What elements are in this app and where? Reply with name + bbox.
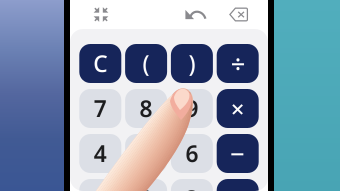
button[interactable]: 3	[171, 179, 213, 191]
staticText: −	[230, 137, 245, 170]
button[interactable]: 4	[79, 134, 121, 173]
button[interactable]: ÷	[217, 44, 259, 83]
button[interactable]: 5	[125, 134, 167, 173]
staticText: 7	[94, 93, 107, 123]
staticText: C	[93, 48, 107, 78]
staticText: 2	[140, 183, 153, 191]
button[interactable]: C	[79, 44, 121, 83]
staticText: (	[143, 48, 150, 78]
staticText: ×	[231, 93, 245, 124]
button[interactable]: (	[125, 44, 167, 83]
staticText: 6	[185, 138, 198, 168]
button[interactable]: 8	[125, 89, 167, 128]
button[interactable]: 2	[125, 179, 167, 191]
staticText: 5	[140, 138, 153, 168]
button[interactable]: Delete	[229, 7, 248, 22]
staticText: 4	[94, 138, 107, 168]
button[interactable]: +	[217, 179, 259, 191]
button[interactable]: Undo	[185, 8, 206, 20]
staticText: 8	[140, 93, 153, 123]
button[interactable]: ×	[217, 89, 259, 128]
button[interactable]: 9	[171, 89, 213, 128]
button[interactable]: )	[171, 44, 213, 83]
staticText: 3	[185, 183, 198, 191]
button[interactable]: −	[217, 134, 259, 173]
button[interactable]: 1	[79, 179, 121, 191]
button[interactable]: Collapse keypad	[94, 7, 108, 22]
staticText: 1	[94, 183, 107, 191]
staticText: )	[188, 48, 195, 78]
staticText: ÷	[231, 47, 245, 80]
button[interactable]: 6	[171, 134, 213, 173]
button[interactable]: 7	[79, 89, 121, 128]
staticText: 9	[185, 93, 198, 123]
